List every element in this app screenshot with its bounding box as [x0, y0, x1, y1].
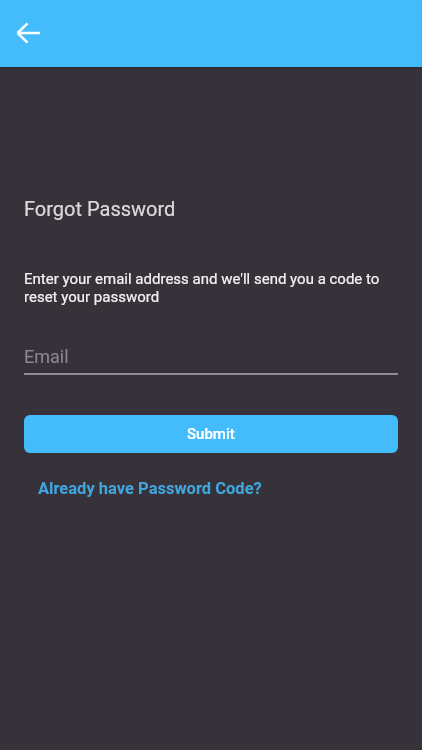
button[interactable] — [14, 18, 44, 48]
button[interactable]: Submit — [24, 415, 398, 453]
staticText: Submit — [187, 425, 235, 443]
staticText: Enter your email address and we'll send … — [24, 270, 380, 306]
button[interactable]: Already have Password Code? — [38, 479, 262, 498]
staticText: Forgot Password — [24, 197, 176, 220]
staticText: Email — [24, 346, 69, 367]
